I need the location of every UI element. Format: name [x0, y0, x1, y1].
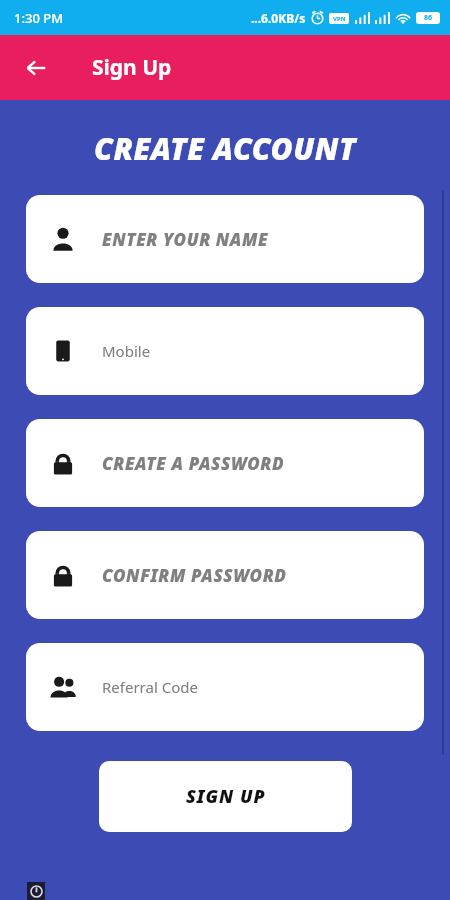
staticText: Referral Code — [102, 677, 198, 697]
staticText: CREATE A PASSWORD — [102, 452, 285, 475]
staticText: VPN — [333, 15, 346, 23]
button[interactable]: CREATE A PASSWORD — [26, 419, 424, 507]
button[interactable]: SIGN UP — [99, 761, 352, 832]
staticText: 86 — [424, 13, 433, 23]
button[interactable]: CONFIRM PASSWORD — [26, 531, 424, 619]
staticText: CONFIRM PASSWORD — [102, 564, 287, 587]
button[interactable]: Referral Code — [26, 643, 424, 731]
staticText: Sign Up — [92, 53, 172, 82]
staticText: CREATE ACCOUNT — [0, 128, 450, 169]
staticText: ENTER YOUR NAME — [102, 228, 269, 251]
staticText: Mobile — [102, 341, 151, 361]
staticText: ...6.0KB/s — [251, 10, 306, 26]
staticText: SIGN UP — [186, 784, 266, 809]
staticText: 1:30 PM — [14, 9, 64, 27]
button[interactable]: ENTER YOUR NAME — [26, 195, 424, 283]
button[interactable]: Mobile — [26, 307, 424, 395]
button[interactable]: Back — [14, 46, 58, 90]
